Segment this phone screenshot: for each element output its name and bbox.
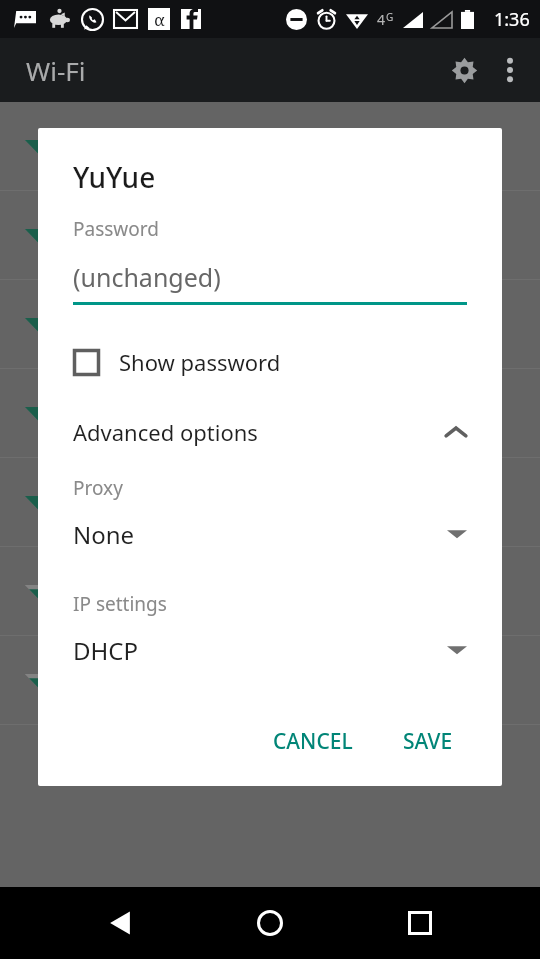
staticText: Xiaomi_5G: [102, 398, 211, 428]
button[interactable]: None: [73, 517, 467, 551]
staticText: None: [73, 518, 447, 551]
button[interactable]: HP-Print-66-M227f LaserJet: [0, 547, 540, 635]
staticText: HP-Print-66-M227f LaserJet: [102, 576, 381, 606]
button[interactable]: Xiaomi_5G: [0, 369, 540, 457]
button[interactable]: YuYue: [0, 280, 540, 368]
staticText: SAVE: [403, 727, 453, 756]
button[interactable]: CANCEL: [259, 717, 367, 766]
button[interactable]: More options: [488, 48, 532, 92]
button[interactable]: Home: [240, 893, 300, 953]
staticText: Wi-Fi: [26, 53, 86, 88]
button[interactable]: TP-LINK_7B4C: [0, 102, 540, 190]
staticText: YuYue: [73, 158, 156, 196]
staticText: Advanced options: [73, 417, 445, 447]
staticText: TP-LINK_0812: [102, 487, 245, 517]
button[interactable]: SAVE: [389, 717, 467, 766]
staticText: DHCP: [73, 634, 447, 667]
staticText: Password: [73, 216, 159, 242]
button[interactable]: Settings: [440, 46, 488, 94]
staticText: ChinaNet-aQ8f: [102, 220, 255, 250]
button[interactable]: Show password: [73, 347, 467, 377]
button[interactable]: DHCP: [73, 633, 467, 667]
staticText: 4: [377, 10, 386, 29]
staticText: 1:36: [494, 7, 530, 32]
button[interactable]: TP-LINK_0812: [0, 458, 540, 546]
button[interactable]: (unchanged): [73, 260, 467, 305]
staticText: G: [386, 10, 394, 24]
button[interactable]: Advanced options: [73, 415, 467, 449]
staticText: Show password: [119, 347, 281, 377]
button[interactable]: Back: [90, 893, 150, 953]
button[interactable]: midea_ca_0451: [0, 636, 540, 724]
staticText: IP settings: [73, 591, 167, 617]
button[interactable]: Recents: [390, 893, 450, 953]
staticText: Proxy: [73, 475, 123, 501]
staticText: CANCEL: [273, 727, 353, 756]
staticText: α: [154, 8, 165, 30]
staticText: (unchanged): [73, 260, 221, 294]
button[interactable]: ChinaNet-aQ8f: [0, 191, 540, 279]
